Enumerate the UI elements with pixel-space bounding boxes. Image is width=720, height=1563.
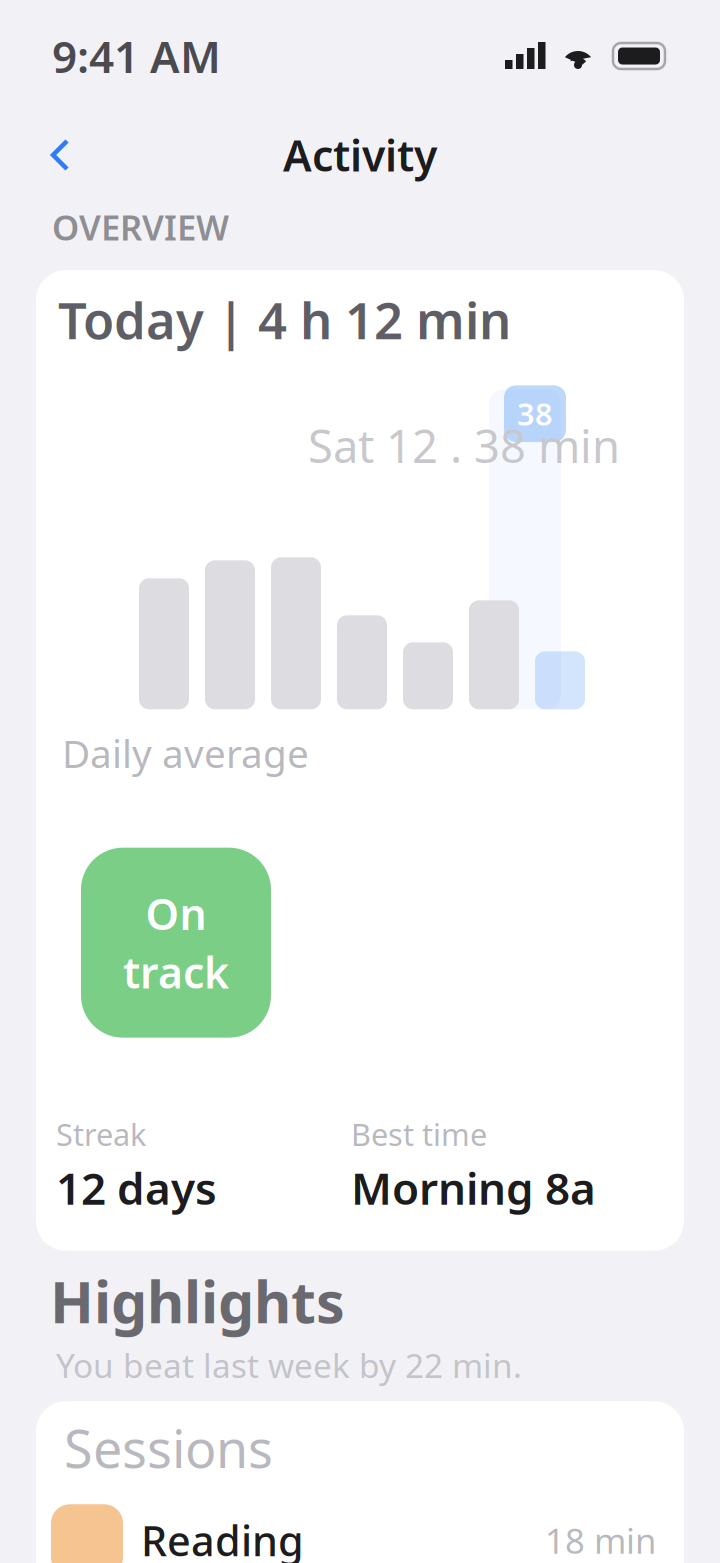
staticText: 38 — [517, 393, 553, 434]
staticText: 18 min — [545, 1517, 656, 1563]
staticText: Reading — [141, 1513, 304, 1563]
staticText: Today | 4 h 12 min — [58, 286, 511, 353]
staticText: Morning 8a — [351, 1158, 596, 1217]
staticText: OVERVIEW — [52, 204, 229, 250]
staticText: You beat last week by 22 min. — [56, 1343, 522, 1387]
staticText: Streak — [56, 1114, 146, 1154]
staticText: On — [145, 885, 206, 942]
staticText: 9:41 AM — [52, 27, 221, 85]
button[interactable]: Reading — [36, 1482, 684, 1563]
staticText: Activity — [283, 127, 437, 183]
staticText: Highlights — [50, 1263, 345, 1339]
staticText: Daily average — [62, 727, 309, 779]
staticText: Sat 12 . 38 min — [308, 415, 620, 475]
staticText: Best time — [351, 1114, 487, 1154]
staticText: track — [123, 944, 229, 1000]
staticText: 12 days — [56, 1158, 217, 1217]
staticText: Sessions — [64, 1413, 273, 1482]
button[interactable]: Back — [32, 120, 88, 190]
button[interactable]: On — [81, 848, 271, 1038]
